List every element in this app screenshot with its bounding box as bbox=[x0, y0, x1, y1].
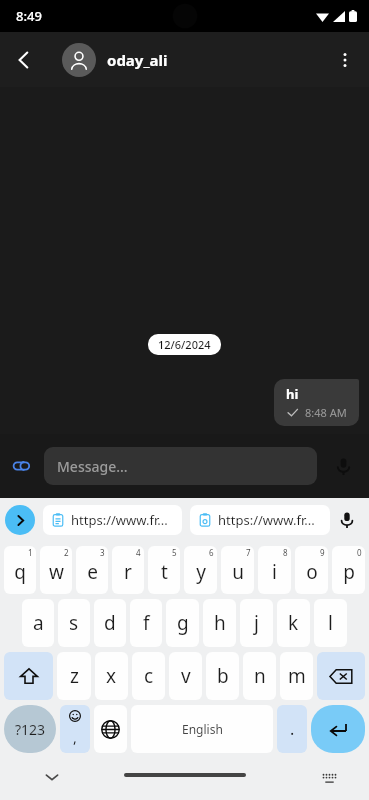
staticText: l bbox=[328, 610, 333, 636]
button[interactable]: h bbox=[203, 599, 236, 647]
staticText: p bbox=[343, 559, 355, 585]
button[interactable]: Enter bbox=[311, 705, 365, 753]
button[interactable]: e bbox=[76, 546, 108, 594]
button[interactable]: oday_ali bbox=[62, 43, 321, 77]
button[interactable]: y bbox=[184, 546, 217, 594]
staticText: z bbox=[70, 663, 79, 689]
button[interactable]: . bbox=[277, 705, 307, 753]
button[interactable]: https://www.fr... bbox=[190, 505, 330, 535]
button[interactable]: x bbox=[95, 652, 128, 700]
staticText: 2 bbox=[64, 547, 69, 558]
button[interactable]: r bbox=[112, 546, 144, 594]
staticText: k bbox=[288, 610, 299, 636]
staticText: , bbox=[73, 728, 77, 747]
staticText: oday_ali bbox=[107, 50, 168, 70]
staticText: 8 bbox=[283, 547, 288, 558]
button[interactable]: t bbox=[148, 546, 180, 594]
staticText: s bbox=[69, 610, 79, 636]
staticText: 8:48 AM bbox=[305, 405, 347, 420]
button[interactable]: Message... bbox=[44, 447, 317, 485]
staticText: English bbox=[182, 721, 223, 737]
button[interactable]: u bbox=[221, 546, 254, 594]
staticText: y bbox=[196, 559, 206, 585]
staticText: https://www.fr... bbox=[218, 511, 315, 529]
staticText: x bbox=[106, 663, 117, 689]
button[interactable]: Emoji bbox=[60, 705, 90, 753]
button[interactable]: i bbox=[258, 546, 291, 594]
button[interactable]: g bbox=[166, 599, 199, 647]
staticText: 4 bbox=[136, 547, 141, 558]
staticText: c bbox=[144, 663, 154, 689]
button[interactable]: a bbox=[22, 599, 54, 647]
staticText: 0 bbox=[357, 547, 362, 558]
button[interactable]: d bbox=[94, 599, 126, 647]
button[interactable]: Switch keyboard bbox=[313, 761, 345, 793]
button[interactable]: p bbox=[332, 546, 365, 594]
button[interactable]: s bbox=[58, 599, 90, 647]
staticText: t bbox=[161, 559, 168, 585]
button[interactable]: w bbox=[40, 546, 72, 594]
button[interactable]: More options bbox=[321, 36, 369, 84]
staticText: 6 bbox=[209, 547, 214, 558]
button[interactable]: Shift bbox=[4, 652, 53, 700]
staticText: 12/6/2024 bbox=[158, 337, 211, 352]
button[interactable]: hi bbox=[274, 379, 359, 426]
staticText: https://www.fr... bbox=[71, 511, 168, 529]
staticText: 1 bbox=[28, 547, 33, 558]
staticText: e bbox=[87, 559, 98, 585]
button[interactable]: Expand suggestions bbox=[5, 505, 35, 535]
button[interactable]: b bbox=[206, 652, 239, 700]
staticText: f bbox=[143, 610, 150, 636]
staticText: 8:49 bbox=[16, 7, 42, 25]
staticText: w bbox=[49, 559, 64, 585]
button[interactable]: Attach bbox=[0, 444, 44, 488]
button[interactable]: ?123 bbox=[4, 705, 56, 753]
button[interactable]: n bbox=[243, 652, 276, 700]
staticText: i bbox=[272, 559, 277, 585]
staticText: b bbox=[217, 663, 229, 689]
staticText: h bbox=[214, 610, 226, 636]
staticText: d bbox=[104, 610, 116, 636]
staticText: n bbox=[254, 663, 266, 689]
staticText: . bbox=[290, 718, 295, 740]
staticText: a bbox=[33, 610, 44, 636]
button[interactable]: English bbox=[131, 705, 273, 753]
staticText: r bbox=[124, 559, 132, 585]
button[interactable]: q bbox=[4, 546, 36, 594]
button[interactable]: Back bbox=[0, 36, 48, 84]
staticText: Message... bbox=[57, 457, 128, 476]
staticText: o bbox=[306, 559, 318, 585]
staticText: 5 bbox=[172, 547, 177, 558]
staticText: j bbox=[254, 610, 259, 636]
button[interactable]: https://www.fr... bbox=[43, 505, 182, 535]
button[interactable]: k bbox=[277, 599, 310, 647]
staticText: 3 bbox=[100, 547, 105, 558]
button[interactable]: Hide keyboard bbox=[34, 759, 70, 795]
button[interactable]: Backspace bbox=[317, 652, 365, 700]
button[interactable]: o bbox=[295, 546, 328, 594]
button[interactable]: z bbox=[57, 652, 91, 700]
button[interactable]: l bbox=[314, 599, 347, 647]
button[interactable]: Voice input bbox=[330, 498, 364, 542]
staticText: hi bbox=[286, 385, 299, 403]
staticText: u bbox=[232, 559, 244, 585]
button[interactable]: Change language bbox=[94, 705, 127, 753]
staticText: 9 bbox=[320, 547, 325, 558]
button[interactable]: v bbox=[169, 652, 202, 700]
staticText: q bbox=[14, 559, 26, 585]
staticText: m bbox=[288, 663, 306, 689]
button[interactable]: f bbox=[130, 599, 162, 647]
button[interactable]: c bbox=[132, 652, 165, 700]
button[interactable]: j bbox=[240, 599, 273, 647]
button[interactable]: m bbox=[280, 652, 313, 700]
staticText: v bbox=[181, 663, 191, 689]
staticText: g bbox=[177, 610, 189, 636]
staticText: ?123 bbox=[15, 720, 46, 739]
staticText: 7 bbox=[246, 547, 251, 558]
